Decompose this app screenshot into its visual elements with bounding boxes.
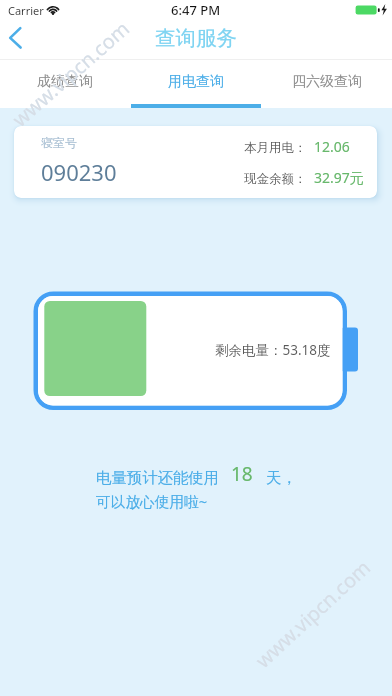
staticText: 四六级查询	[292, 73, 362, 91]
staticText: Carrier	[8, 3, 44, 18]
staticText: 成绩查询	[37, 73, 93, 91]
staticText: 可以放心使用啦~	[96, 491, 208, 511]
staticText: 天，	[266, 468, 297, 487]
staticText: 电量预计还能使用	[96, 468, 220, 487]
staticText: 090230	[41, 157, 117, 187]
staticText: 12.06	[314, 137, 350, 156]
staticText: 剩余电量：53.18度	[215, 341, 331, 359]
staticText: 寝室号	[41, 135, 77, 150]
staticText: www.vipcn.com	[6, 15, 135, 132]
staticText: 18	[231, 461, 253, 487]
button[interactable]: 四六级查询	[261, 59, 392, 108]
staticText: www.vipcn.com	[249, 553, 377, 674]
staticText: 本月用电：	[244, 140, 307, 156]
staticText: 32.97元	[314, 168, 364, 187]
staticText: 查询服务	[155, 25, 237, 51]
button[interactable]: 用电查询	[130, 59, 261, 108]
staticText: 6:47 PM	[171, 1, 221, 19]
button[interactable]: 寝室号	[14, 126, 377, 198]
button[interactable]: Back	[0, 22, 40, 59]
staticText: 用电查询	[168, 73, 224, 91]
button[interactable]: 成绩查询	[0, 59, 130, 108]
staticText: 现金余额：	[244, 171, 307, 187]
